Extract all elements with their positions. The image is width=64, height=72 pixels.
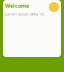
staticText: Lorem ipsum dolor sit — [5, 11, 44, 17]
staticText: Welcome — [5, 2, 29, 9]
